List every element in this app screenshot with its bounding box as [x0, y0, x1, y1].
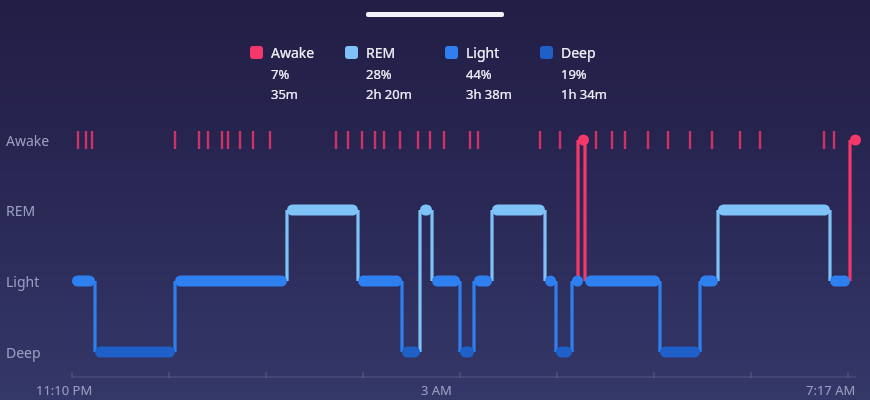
staticText: 3h 38m	[466, 85, 512, 103]
button[interactable]: Selected tab	[366, 12, 504, 17]
staticText: 7:17 AM	[806, 381, 856, 399]
staticText: 3 AM	[421, 381, 452, 399]
staticText: 2h 20m	[366, 85, 412, 103]
staticText: Deep	[6, 343, 41, 362]
staticText: Light	[466, 43, 500, 62]
staticText: REM	[6, 201, 36, 220]
staticText: Awake	[6, 131, 50, 150]
button[interactable]: Awake	[250, 43, 345, 103]
staticText: 11:10 PM	[36, 381, 93, 399]
staticText: Light	[6, 272, 40, 291]
staticText: 7%	[271, 65, 290, 83]
staticText: Deep	[561, 43, 596, 62]
staticText: Awake	[271, 43, 315, 62]
staticText: 28%	[366, 65, 392, 83]
button[interactable]: Light	[445, 43, 540, 103]
button[interactable]: Deep	[540, 43, 635, 103]
staticText: REM	[366, 43, 396, 62]
staticText: 1h 34m	[561, 85, 607, 103]
staticText: 44%	[466, 65, 492, 83]
staticText: 19%	[561, 65, 587, 83]
staticText: 35m	[271, 85, 299, 103]
button[interactable]: REM	[345, 43, 445, 103]
